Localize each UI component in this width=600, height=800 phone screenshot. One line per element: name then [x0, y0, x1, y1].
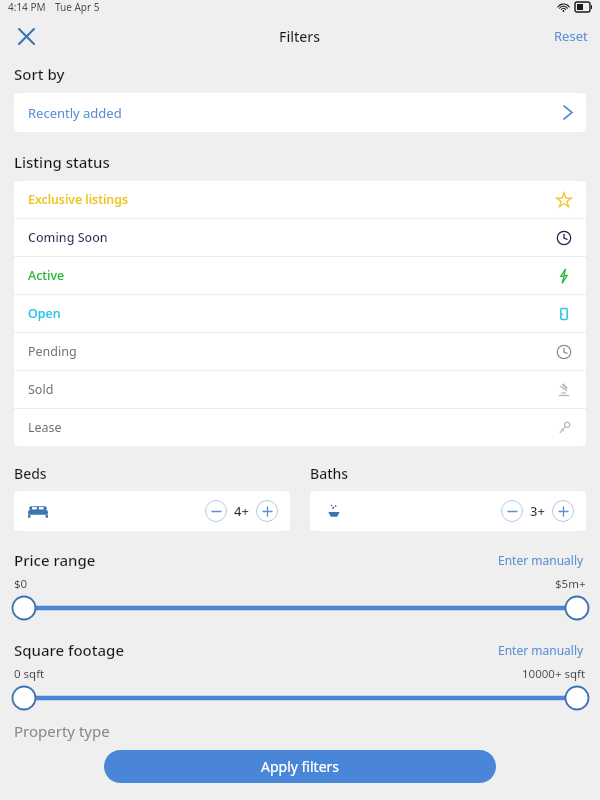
button[interactable]: Increase: [552, 500, 574, 522]
button[interactable]: Decrease: [501, 500, 523, 522]
button[interactable]: Increase: [256, 500, 278, 522]
button[interactable]: Apply filters: [104, 750, 496, 783]
button[interactable]: Range slider: [0, 595, 600, 621]
staticText: 0 sqft: [14, 666, 45, 682]
button[interactable]: Sold: [14, 371, 586, 408]
staticText: Coming Soon: [28, 229, 108, 246]
staticText: Sort by: [14, 64, 65, 84]
staticText: Square footage: [14, 640, 125, 660]
button[interactable]: Open: [14, 295, 586, 332]
button[interactable]: Coming Soon: [14, 219, 586, 256]
staticText: Baths: [310, 464, 349, 483]
staticText: Apply filters: [261, 757, 340, 776]
button[interactable]: Enter manually: [496, 550, 586, 570]
staticText: Property type: [14, 721, 110, 741]
button[interactable]: Close: [8, 20, 44, 52]
staticText: Recently added: [28, 104, 122, 122]
staticText: Enter manually: [498, 642, 584, 658]
staticText: Price range: [14, 550, 96, 570]
staticText: Tue Apr 5: [55, 0, 100, 14]
staticText: 4+: [234, 502, 249, 520]
button[interactable]: Decrease: [205, 500, 227, 522]
button[interactable]: Range slider: [0, 685, 600, 711]
staticText: 10000+ sqft: [522, 666, 586, 682]
button[interactable]: Pending: [14, 333, 586, 370]
staticText: Enter manually: [498, 552, 584, 568]
button[interactable]: Lease: [14, 409, 586, 446]
staticText: Beds: [14, 464, 47, 483]
staticText: Pending: [28, 343, 77, 360]
button[interactable]: Reset: [550, 23, 592, 49]
staticText: 3+: [530, 502, 545, 520]
staticText: Exclusive listings: [28, 191, 128, 208]
staticText: $0: [14, 576, 28, 592]
staticText: Reset: [554, 27, 588, 45]
staticText: Lease: [28, 419, 62, 436]
button[interactable]: Exclusive listings: [14, 181, 586, 218]
staticText: Sold: [28, 381, 54, 398]
button[interactable]: Enter manually: [496, 640, 586, 660]
button[interactable]: Active: [14, 257, 586, 294]
staticText: $5m+: [555, 576, 586, 592]
staticText: Open: [28, 305, 61, 322]
staticText: Active: [28, 267, 65, 284]
staticText: 4:14 PM: [8, 0, 46, 14]
button[interactable]: Recently added: [14, 93, 586, 132]
staticText: Filters: [279, 27, 321, 46]
staticText: Listing status: [14, 152, 110, 172]
